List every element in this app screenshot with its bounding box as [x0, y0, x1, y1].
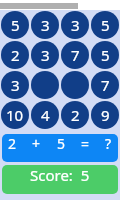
button[interactable]: 5	[1, 11, 29, 39]
button[interactable]: Score: 5	[2, 165, 118, 194]
button[interactable]: 4	[31, 101, 59, 129]
button[interactable]: 5	[91, 11, 119, 39]
button[interactable]: 5	[91, 41, 119, 69]
staticText: +	[32, 134, 41, 153]
staticText: 3	[41, 45, 50, 65]
button[interactable]: 3	[31, 41, 59, 69]
button[interactable]: 3	[61, 11, 89, 39]
button[interactable]: 10	[1, 101, 29, 129]
staticText: 2	[8, 134, 17, 153]
staticText: 7	[101, 75, 110, 95]
button[interactable]: 2	[61, 101, 89, 129]
staticText: 5	[57, 134, 66, 153]
button[interactable]	[61, 71, 89, 99]
staticText: 2	[71, 105, 80, 125]
staticText: 3	[11, 75, 20, 95]
staticText: Score: 5	[30, 165, 90, 182]
button[interactable]: 2	[1, 41, 29, 69]
staticText: 5	[11, 15, 20, 35]
button[interactable]: 7	[91, 71, 119, 99]
staticText: 7	[71, 45, 80, 65]
staticText: =	[81, 134, 90, 153]
staticText: 5	[101, 45, 110, 65]
staticText: 3	[41, 15, 50, 35]
staticText: 10	[6, 105, 24, 125]
button[interactable]: 3	[1, 71, 29, 99]
button[interactable]: 3	[31, 11, 59, 39]
button[interactable]: 2	[2, 134, 118, 162]
staticText: 5	[101, 15, 110, 35]
staticText: 4	[41, 105, 50, 125]
staticText: 2	[11, 45, 20, 65]
other: Time remaining	[0, 0, 120, 10]
button[interactable]: 7	[61, 41, 89, 69]
staticText: 9	[101, 105, 110, 125]
button[interactable]: 9	[91, 101, 119, 129]
staticText: 3	[71, 15, 80, 35]
staticText: ?	[105, 134, 112, 153]
button[interactable]	[31, 71, 59, 99]
